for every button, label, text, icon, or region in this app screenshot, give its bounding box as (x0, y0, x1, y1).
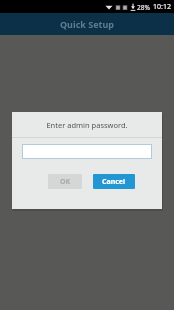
staticText: Quick Setup (60, 18, 115, 30)
button[interactable]: OK (48, 174, 82, 189)
staticText: Enter admin password. (46, 120, 128, 130)
staticText: OK (60, 177, 71, 187)
button[interactable]: Cancel (93, 174, 135, 189)
staticText: 10:12 (153, 2, 171, 12)
button[interactable]: Password input field (22, 144, 152, 159)
staticText: 28% (137, 3, 150, 12)
staticText: Cancel (102, 177, 126, 187)
